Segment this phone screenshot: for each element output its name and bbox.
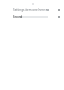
staticText: Settings item one here now (13, 8, 49, 12)
button[interactable]: Settings item one here now (0, 6, 64, 13)
staticText: Second (13, 15, 23, 19)
button[interactable]: Open item (56, 14, 61, 19)
button[interactable]: Second (0, 13, 64, 20)
button[interactable]: Open item (56, 7, 61, 12)
